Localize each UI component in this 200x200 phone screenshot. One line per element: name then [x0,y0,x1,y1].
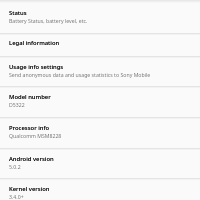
staticText: Processor info [9,124,50,132]
staticText: Qualcomm MSM8228 [9,132,62,139]
staticText: 3.4.0+ [9,193,24,200]
button[interactable]: Model number [0,87,200,117]
staticText: Status [9,9,27,17]
staticText: Processor info [9,124,50,132]
staticText: Status [9,9,27,17]
staticText: D5322 [9,101,25,108]
button[interactable]: Kernel version [0,179,200,200]
staticText: Send anonymous data and usage statistics… [9,71,151,78]
staticText: Legal information [9,39,60,47]
staticText: Usage info settings [9,63,64,71]
button[interactable]: Status [0,3,200,33]
staticText: Usage info settings [9,63,64,71]
button[interactable]: Legal information [0,34,200,56]
staticText: Kernel version [9,185,50,193]
button[interactable]: Processor info [0,118,200,148]
staticText: Kernel version [9,185,50,193]
button[interactable]: Usage info settings [0,57,200,86]
staticText: Model number [9,93,51,101]
staticText: Android version [9,155,54,163]
staticText: Battery Status, battery level, etc. [9,17,88,24]
staticText: Model number [9,93,51,101]
staticText: Legal information [9,39,60,47]
staticText: 5.0.2 [9,163,21,170]
staticText: Android version [9,155,54,163]
button[interactable]: Android version [0,149,200,178]
